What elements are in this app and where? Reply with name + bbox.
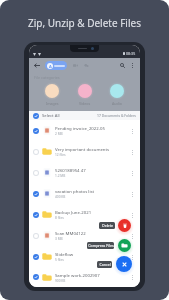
staticText: 2 MB	[55, 132, 63, 136]
staticText: Select All	[42, 113, 60, 119]
staticText: Sample work-2002907	[55, 272, 100, 278]
button[interactable]: vacation photos list	[29, 183, 140, 204]
button[interactable]: Cancel	[97, 261, 112, 268]
staticText: Images	[46, 101, 59, 106]
staticText: File categories	[34, 75, 60, 80]
staticText: Scan MM04122	[55, 230, 86, 236]
button[interactable]: A	[45, 61, 67, 70]
staticText: 08:35	[126, 51, 136, 56]
button[interactable]: Compress Files	[87, 242, 114, 249]
button[interactable]: Scan MM04122	[29, 225, 140, 246]
button[interactable]: Item options	[128, 127, 136, 135]
staticText: 12 files	[55, 153, 66, 157]
button[interactable]: Item options	[128, 190, 136, 198]
button[interactable]: Item options	[128, 232, 136, 240]
button[interactable]: Videos	[76, 82, 94, 106]
staticText: vacation photos list	[55, 188, 95, 194]
button[interactable]: Back	[32, 61, 41, 70]
button[interactable]: More options	[128, 61, 137, 70]
button[interactable]: Search	[118, 61, 127, 70]
button[interactable]: Item options	[128, 253, 136, 261]
button[interactable]: Recent	[72, 62, 79, 69]
button[interactable]: Slideflow	[29, 246, 140, 267]
staticText: 3 MB	[55, 237, 63, 241]
button[interactable]: Delete	[99, 222, 115, 229]
staticText: 5260188954 47	[55, 167, 86, 173]
button[interactable]: Item options	[128, 211, 136, 219]
button[interactable]: Sample work-2002907	[29, 267, 140, 287]
staticText: Slideflow	[55, 251, 74, 257]
button[interactable]: Delete	[118, 219, 131, 232]
staticText: Pending invoice_2022-05	[55, 125, 106, 131]
button[interactable]: Pending invoice_2022-05	[29, 120, 140, 141]
staticText: 5 files	[55, 258, 64, 262]
staticText: 900 KB	[55, 279, 66, 283]
staticText: 1.2 MB	[55, 174, 66, 178]
button[interactable]: 5260188954 47	[29, 162, 140, 183]
staticText: 8 files	[55, 216, 64, 220]
staticText: Compress Files	[88, 243, 114, 248]
staticText: Backup June-2021	[55, 209, 92, 215]
button[interactable]: Images	[43, 82, 61, 106]
staticText: A	[49, 64, 52, 69]
button[interactable]: Backup June-2021	[29, 204, 140, 225]
button[interactable]: Select All	[29, 111, 140, 120]
staticText: 400 KB	[55, 195, 66, 199]
staticText: Delete	[102, 223, 113, 228]
button[interactable]: Audio	[108, 82, 126, 106]
button[interactable]: Very important documents	[29, 141, 140, 162]
button[interactable]: Item options	[128, 273, 136, 281]
staticText: Very important documents	[55, 146, 110, 152]
staticText: Cancel	[99, 262, 111, 267]
button[interactable]: Item options	[128, 148, 136, 156]
button[interactable]: Cloud	[83, 62, 90, 69]
staticText: 17 Documents & Folders	[97, 113, 136, 118]
button[interactable]: Item options	[128, 169, 136, 177]
staticText: Zip, Unzip & Delete Files	[28, 16, 141, 30]
staticText: Videos	[79, 101, 91, 106]
button[interactable]: Compress Files	[118, 239, 131, 252]
staticText: Audio	[112, 101, 122, 106]
button[interactable]: Cancel	[116, 256, 132, 272]
